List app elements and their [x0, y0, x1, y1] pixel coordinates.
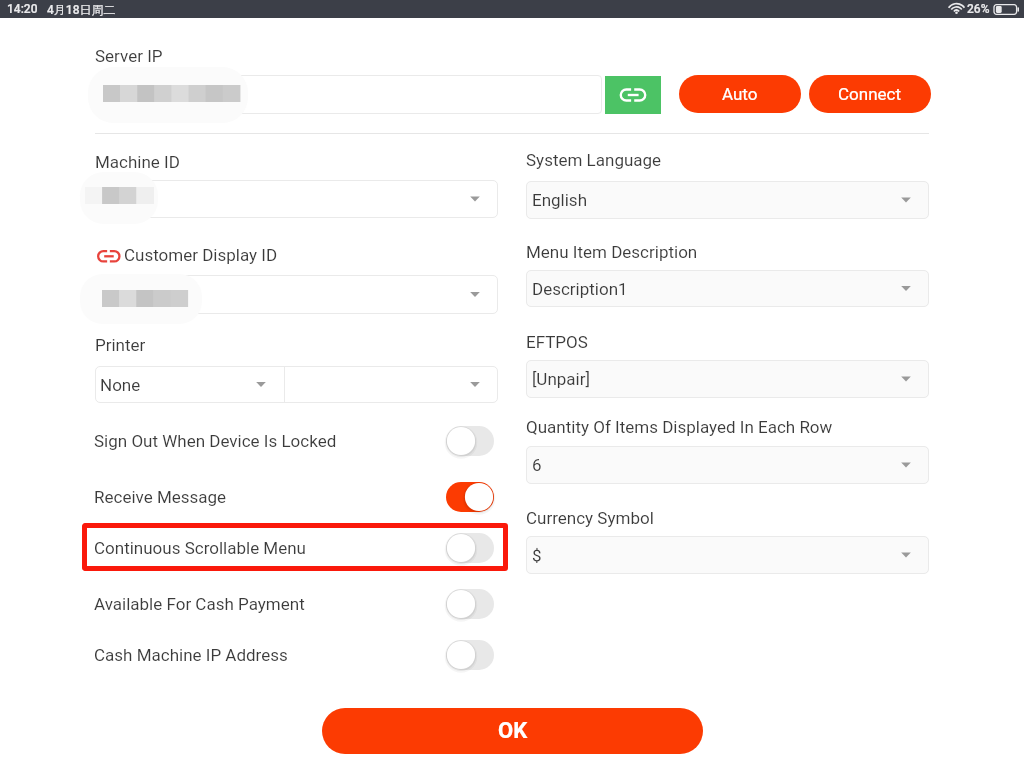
- button[interactable]: Customer Display ID: [95, 275, 498, 314]
- staticText: 6: [532, 455, 542, 475]
- staticText: Description1: [532, 279, 628, 299]
- button[interactable]: Printer port: [284, 366, 498, 403]
- staticText: Connect: [838, 84, 902, 104]
- button[interactable]: Currency Symbol: [526, 536, 929, 574]
- staticText: Receive Message: [94, 487, 227, 507]
- button[interactable]: Server IP address field: [95, 75, 602, 114]
- staticText: 26%: [967, 2, 990, 16]
- staticText: [Unpair]: [532, 369, 590, 389]
- staticText: Available For Cash Payment: [94, 594, 305, 614]
- button[interactable]: Available For Cash Payment: [88, 580, 506, 628]
- button[interactable]: System Language: [526, 181, 929, 219]
- staticText: English: [532, 190, 588, 210]
- button[interactable]: Auto: [679, 75, 801, 113]
- button[interactable]: Machine ID: [95, 180, 498, 218]
- button[interactable]: Available For Cash Payment, off: [446, 589, 494, 619]
- staticText: Auto: [722, 84, 758, 104]
- button[interactable]: Cash Machine IP Address, off: [446, 640, 494, 670]
- button[interactable]: Continuous Scrollable Menu, off: [446, 533, 494, 563]
- button[interactable]: Receive Message, on: [446, 482, 494, 512]
- button[interactable]: Quantity of items per row: [526, 446, 929, 484]
- staticText: Sign Out When Device Is Locked: [94, 431, 337, 451]
- button[interactable]: Link: [605, 76, 661, 114]
- staticText: Cash Machine IP Address: [94, 645, 288, 665]
- button[interactable]: EFTPOS: [526, 360, 929, 398]
- button[interactable]: Connect: [809, 75, 931, 113]
- button[interactable]: Printer model: [95, 366, 284, 403]
- button[interactable]: Receive Message: [88, 473, 506, 521]
- button[interactable]: Sign Out When Device Is Locked: [88, 417, 506, 465]
- staticText: Printer: [95, 335, 146, 355]
- staticText: Customer Display ID: [124, 245, 278, 265]
- button[interactable]: OK: [322, 708, 703, 754]
- staticText: Currency Symbol: [526, 508, 654, 528]
- button[interactable]: Continuous Scrollable Menu: [88, 524, 506, 572]
- staticText: 14:20: [7, 2, 38, 16]
- staticText: Quantity Of Items Displayed In Each Row: [526, 417, 833, 437]
- button[interactable]: Cash Machine IP Address: [88, 631, 506, 679]
- staticText: OK: [498, 718, 528, 744]
- staticText: None: [100, 375, 141, 395]
- staticText: $: [532, 545, 542, 565]
- staticText: Server IP: [95, 46, 163, 66]
- staticText: System Language: [526, 150, 662, 170]
- button[interactable]: Sign Out When Device Is Locked, off: [446, 426, 494, 456]
- button[interactable]: Menu Item Description: [526, 270, 929, 307]
- staticText: Machine ID: [95, 152, 180, 172]
- staticText: EFTPOS: [526, 332, 588, 352]
- staticText: Continuous Scrollable Menu: [94, 538, 306, 558]
- staticText: Menu Item Description: [526, 242, 698, 262]
- staticText: 4月18日周二: [47, 2, 116, 17]
